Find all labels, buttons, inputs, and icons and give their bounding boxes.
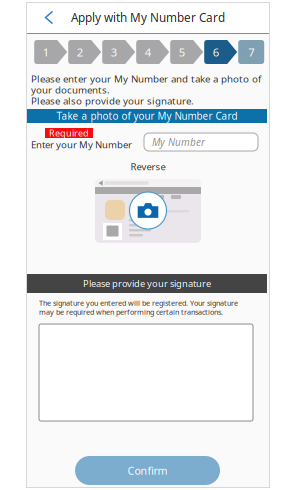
- staticText: your documents.: [31, 83, 110, 96]
- staticText: Apply with My Number Card: [71, 9, 225, 25]
- staticText: 7: [248, 44, 254, 60]
- staticText: Reverse: [130, 160, 165, 173]
- staticText: Please also provide your signature.: [31, 94, 194, 107]
- staticText: 6: [213, 44, 219, 60]
- button[interactable]: Back: [34, 2, 64, 33]
- staticText: Enter your My Number: [31, 138, 132, 151]
- staticText: 3: [111, 44, 117, 60]
- staticText: My Number: [152, 135, 205, 149]
- staticText: Please provide your signature: [83, 277, 211, 290]
- button[interactable]: Confirm: [75, 456, 220, 485]
- staticText: may be required when performing certain …: [39, 307, 223, 317]
- button[interactable]: Take a photo of your My Number Card: [129, 191, 167, 229]
- staticText: Take a photo of your My Number Card: [56, 109, 237, 123]
- staticText: 4: [145, 44, 151, 60]
- staticText: The signature you entered will be regist…: [39, 298, 238, 308]
- staticText: Required: [49, 127, 89, 139]
- staticText: Confirm: [127, 463, 167, 478]
- staticText: 1: [43, 44, 49, 60]
- staticText: 5: [179, 44, 185, 60]
- staticText: Please enter your My Number and take a p…: [31, 72, 261, 85]
- staticText: 2: [77, 44, 83, 60]
